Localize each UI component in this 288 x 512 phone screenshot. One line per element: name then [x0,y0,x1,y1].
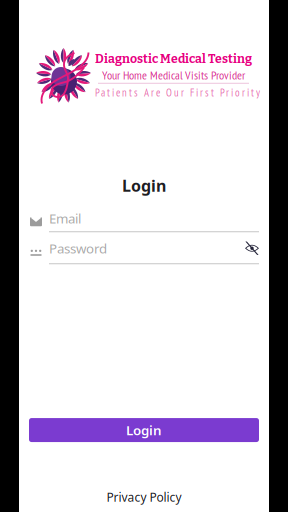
button[interactable]: Privacy Policy [98,486,189,508]
staticText: Login [126,421,162,439]
staticText: Your Home Medical Visits Provider [102,67,245,83]
staticText: Privacy Policy [106,489,181,505]
staticText: Email [49,209,81,227]
staticText: P a t i e n t s A r e O u r F i r s t P … [95,86,260,99]
staticText: Password [49,239,107,257]
button[interactable]: Login [29,418,259,442]
staticText: Diagnostic Medical Testing [95,52,252,66]
staticText: Login [122,175,166,196]
button[interactable]: Show password [245,243,259,254]
